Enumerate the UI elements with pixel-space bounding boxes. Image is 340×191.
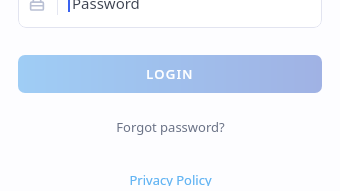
- staticText: Password: [72, 0, 140, 13]
- button[interactable]: Privacy Policy: [119, 166, 222, 191]
- button[interactable]: Password: [18, 0, 322, 28]
- staticText: LOGIN: [146, 65, 194, 83]
- button[interactable]: Forgot password?: [106, 113, 235, 141]
- staticText: Privacy Policy: [129, 171, 212, 186]
- staticText: Forgot password?: [116, 118, 225, 136]
- button[interactable]: LOGIN: [18, 55, 322, 93]
- other: Password: [26, 0, 48, 14]
